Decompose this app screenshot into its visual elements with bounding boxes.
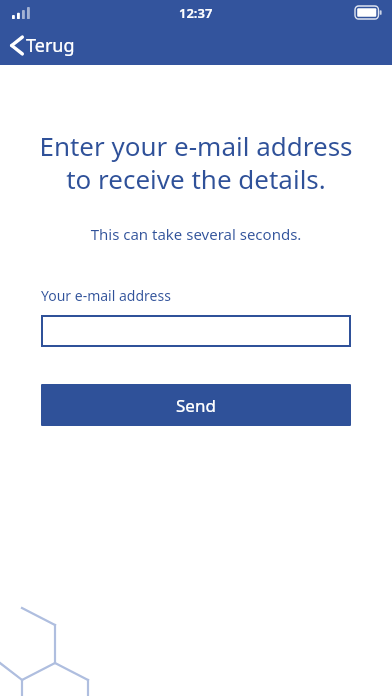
button[interactable] — [41, 315, 351, 347]
staticText: Your e-mail address — [41, 286, 370, 305]
staticText: 12:37 — [179, 4, 213, 22]
staticText: This can take several seconds. — [22, 224, 370, 244]
staticText: Enter your e-mail address to receive the… — [22, 128, 370, 197]
button[interactable]: Terug — [8, 29, 77, 62]
button[interactable]: Send — [41, 384, 351, 426]
staticText: Terug — [26, 33, 75, 58]
staticText: Send — [176, 394, 216, 417]
